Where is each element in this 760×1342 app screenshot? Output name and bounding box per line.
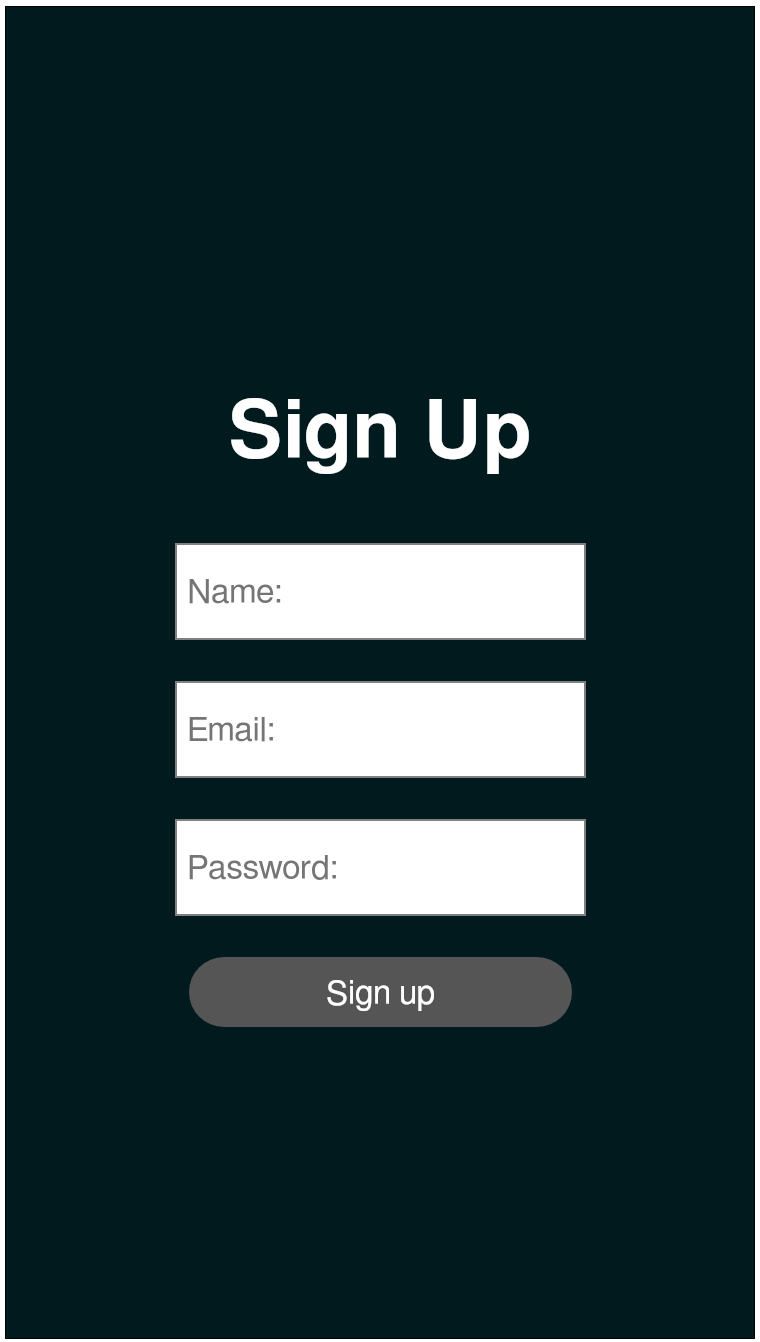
button[interactable]: Email:	[175, 681, 586, 778]
staticText: Sign up	[326, 978, 436, 1011]
staticText: Name:	[187, 576, 283, 610]
button[interactable]: Name:	[175, 543, 586, 640]
staticText: Sign Up	[6, 393, 754, 473]
button[interactable]: Sign up	[189, 957, 572, 1027]
staticText: Email:	[187, 714, 276, 748]
staticText: Password:	[187, 852, 339, 886]
button[interactable]: Password:	[175, 819, 586, 916]
